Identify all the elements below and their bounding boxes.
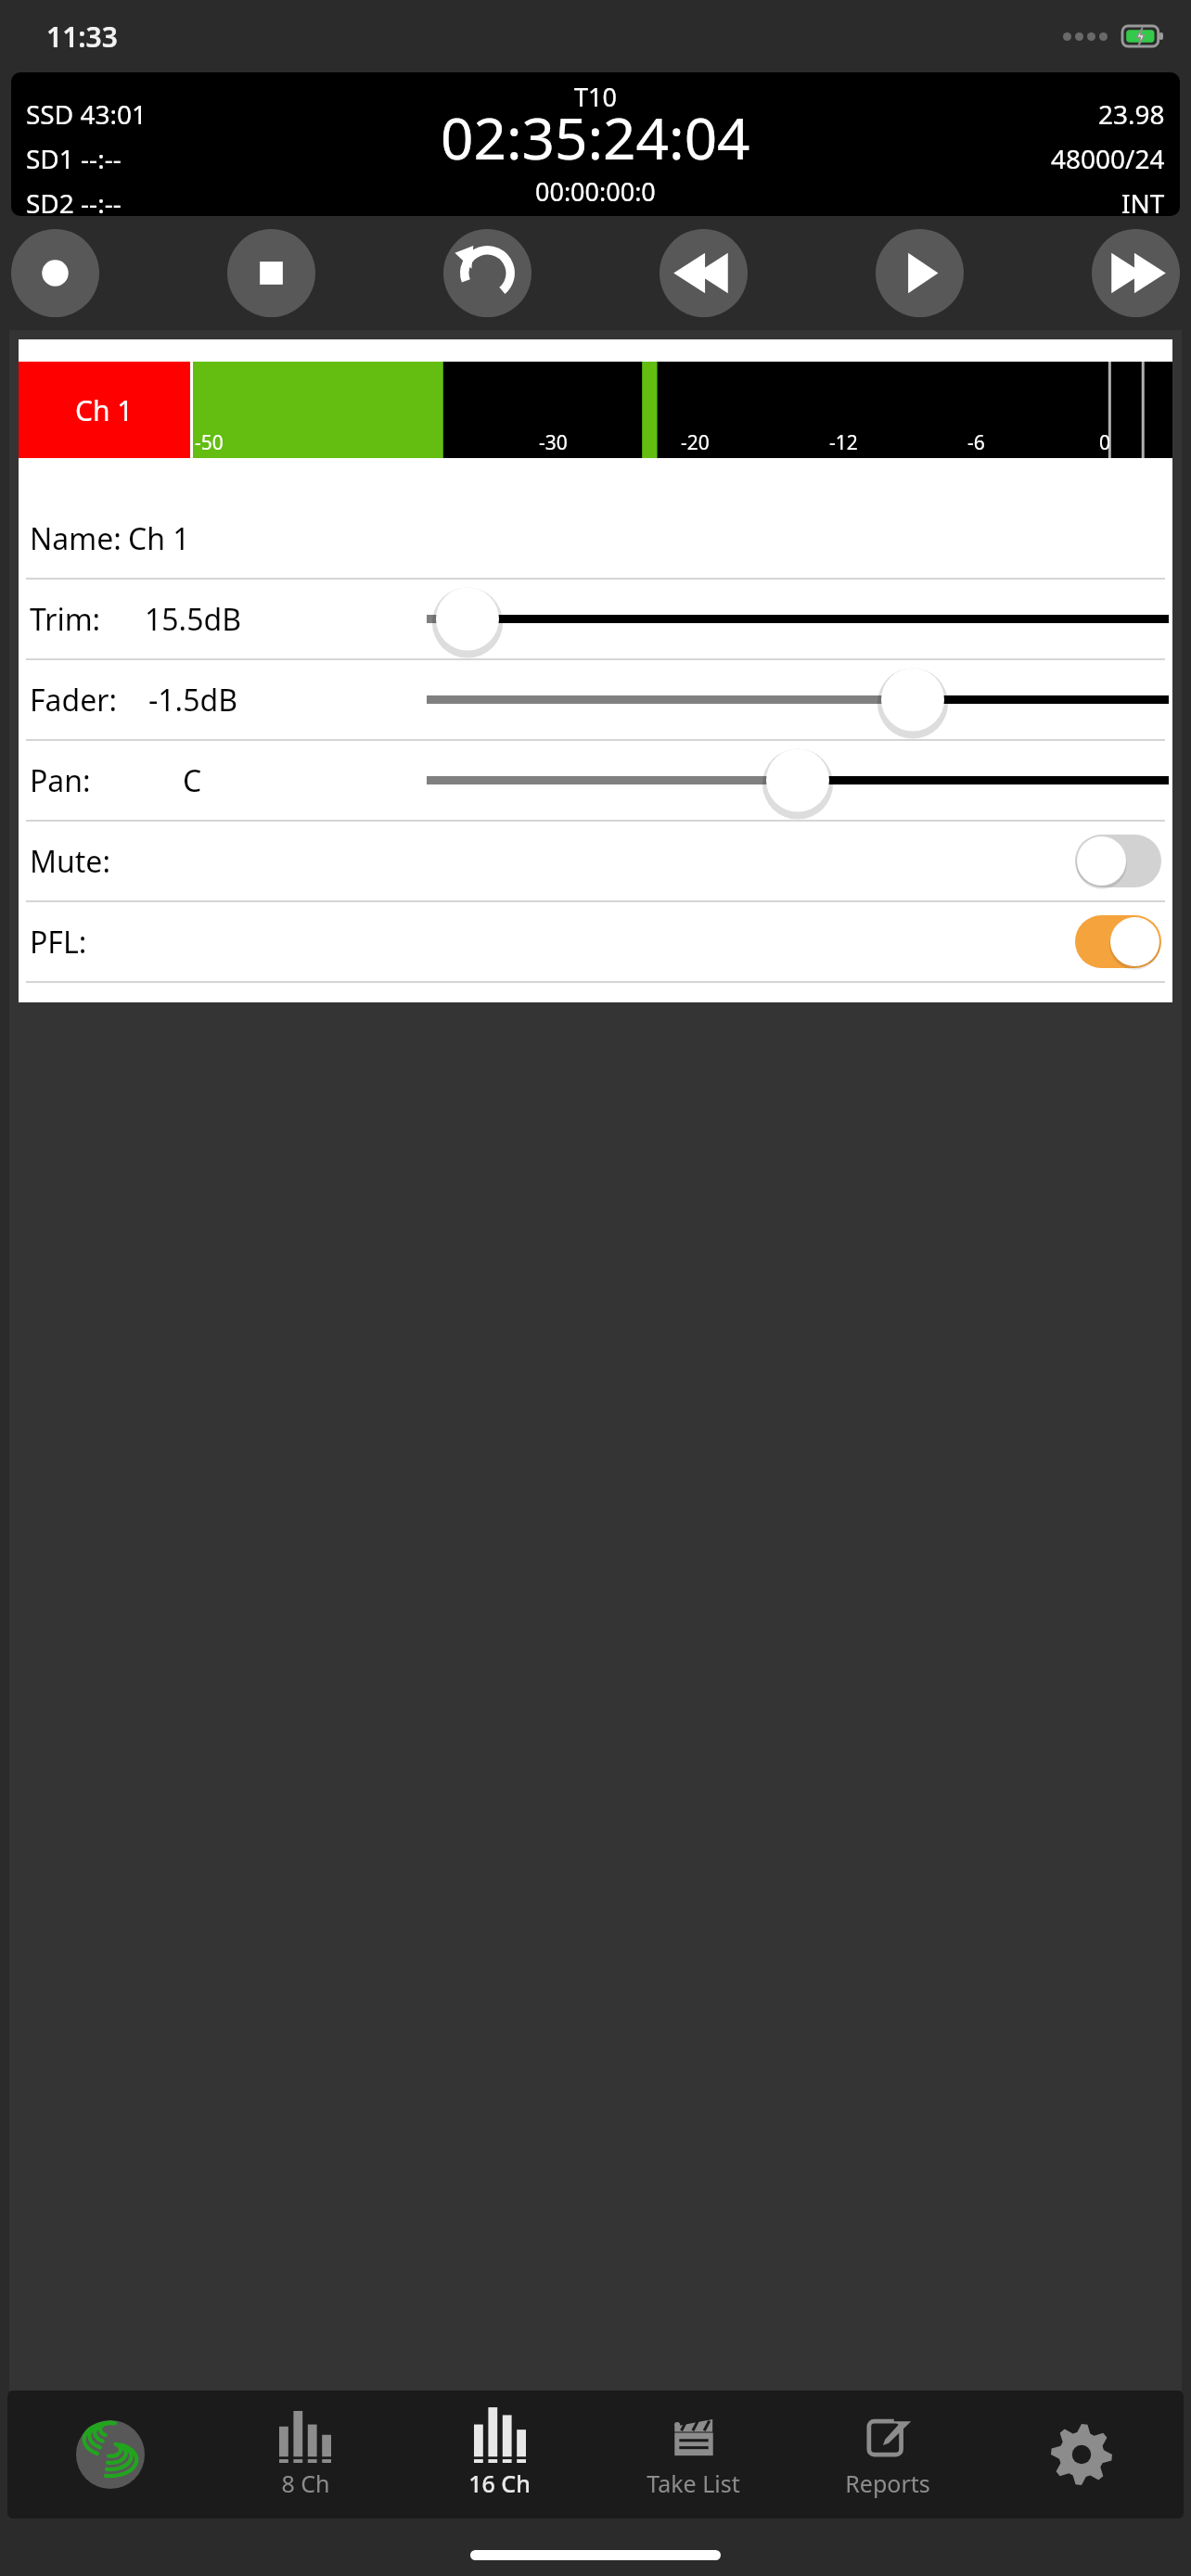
- button[interactable]: Trim:: [19, 580, 1172, 658]
- button[interactable]: Undo: [443, 229, 531, 317]
- staticText: Ch 1: [75, 391, 134, 429]
- staticText: 23.98: [1098, 96, 1165, 132]
- staticText: -6: [967, 429, 985, 456]
- staticText: Name:: [30, 518, 122, 559]
- button[interactable]: 16 Ch: [403, 2391, 596, 2519]
- staticText: -50: [195, 429, 224, 456]
- button[interactable]: Mute:: [19, 822, 1172, 900]
- staticText: 15.5dB: [145, 599, 241, 640]
- button[interactable]: Settings: [984, 2391, 1178, 2519]
- button[interactable]: Record: [11, 229, 99, 317]
- staticText: Trim:: [30, 599, 101, 640]
- button[interactable]: T10: [11, 72, 1180, 216]
- staticText: 11:33: [46, 18, 118, 56]
- staticText: Pan:: [30, 760, 91, 801]
- button[interactable]: Rewind: [660, 229, 748, 317]
- staticText: 48000/24: [1051, 141, 1165, 176]
- button[interactable]: Reports: [790, 2391, 984, 2519]
- staticText: PFL:: [30, 922, 87, 963]
- button[interactable]: App logo: [13, 2391, 208, 2519]
- staticText: 0: [1099, 429, 1111, 456]
- staticText: 02:35:24:04: [441, 98, 750, 176]
- staticText: INT: [1121, 185, 1165, 216]
- button[interactable]: Play: [876, 229, 964, 317]
- staticText: -20: [681, 429, 710, 456]
- staticText: C: [183, 760, 202, 801]
- staticText: SSD 43:01: [26, 96, 147, 132]
- staticText: SD2 --:--: [26, 185, 122, 216]
- staticText: -12: [829, 429, 858, 456]
- button[interactable]: Name:: [19, 499, 1172, 578]
- button[interactable]: Fader:: [19, 660, 1172, 739]
- staticText: SD1 --:--: [26, 141, 122, 176]
- button[interactable]: Stop: [227, 229, 315, 317]
- button[interactable]: Fast forward: [1092, 229, 1180, 317]
- button[interactable]: PFL:: [19, 902, 1172, 981]
- staticText: 8 Ch: [281, 2468, 330, 2499]
- staticText: -30: [539, 429, 568, 456]
- staticText: Reports: [845, 2468, 930, 2499]
- staticText: Fader:: [30, 680, 118, 721]
- staticText: Mute:: [30, 841, 110, 882]
- staticText: -1.5dB: [148, 680, 237, 721]
- button[interactable]: 8 Ch: [208, 2391, 403, 2519]
- staticText: Take List: [647, 2468, 740, 2499]
- button[interactable]: Pan:: [19, 741, 1172, 820]
- staticText: 00:00:00:0: [535, 174, 656, 209]
- staticText: Ch 1: [128, 518, 190, 559]
- staticText: 16 Ch: [468, 2468, 531, 2499]
- button[interactable]: Take List: [596, 2391, 790, 2519]
- staticText: T10: [574, 80, 617, 114]
